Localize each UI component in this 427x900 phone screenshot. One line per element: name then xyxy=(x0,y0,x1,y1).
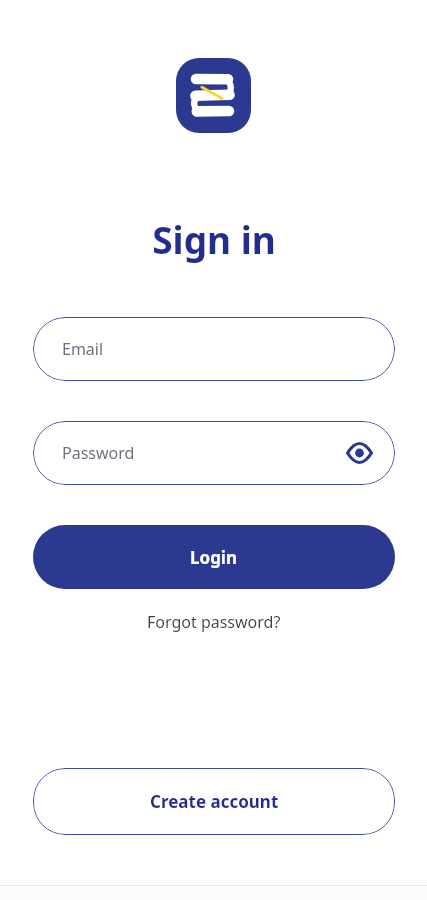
staticText: Password xyxy=(62,442,135,464)
button[interactable]: Password xyxy=(33,421,395,485)
staticText: Email xyxy=(62,338,104,360)
button[interactable]: Forgot password? xyxy=(147,611,281,633)
button[interactable]: Email xyxy=(33,317,395,381)
button[interactable]: Login xyxy=(33,525,395,589)
staticText: Sign in xyxy=(152,214,276,264)
staticText: Login xyxy=(190,546,238,569)
staticText: Create account xyxy=(150,790,279,813)
staticText: Forgot password? xyxy=(147,611,281,633)
button[interactable]: Create account xyxy=(33,768,395,835)
